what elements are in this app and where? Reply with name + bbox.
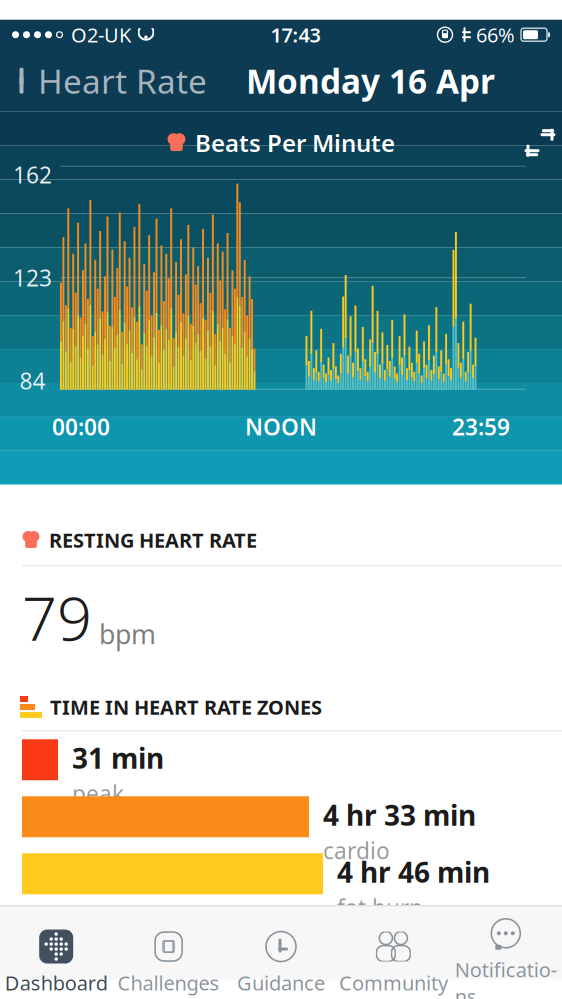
staticText: Heart Rate [38,59,207,103]
staticText: Guidance [237,970,325,996]
staticText: NOON [245,412,317,442]
staticText: Beats Per Minute [195,127,395,159]
staticText: Dashboard [5,970,108,996]
staticText: TIME IN HEART RATE ZONES [50,694,322,720]
staticText: O2-UK [71,21,131,48]
button[interactable]: Notifications [450,913,562,999]
staticText: peak [72,778,124,809]
staticText: 123 [13,263,52,293]
staticText: bpm [99,616,156,652]
staticText: Monday 16 Apr [246,59,495,103]
staticText: Challenges [118,970,220,996]
button[interactable]: Expand chart [518,121,562,165]
staticText: 162 [13,160,52,190]
button[interactable]: Challenges [112,927,225,998]
staticText: 23:59 [452,412,510,442]
staticText: 79 [22,576,92,658]
button[interactable]: Dashboard [0,927,112,998]
staticText: 66% [476,21,515,48]
staticText: 84 [19,366,45,396]
staticText: 17:43 [270,21,320,48]
button[interactable]: Community [337,927,450,998]
staticText: cardio [323,835,390,866]
staticText: 4 hr 46 min [337,853,490,890]
button[interactable]: Guidance [225,927,337,998]
staticText: fat burn [337,892,423,923]
staticText: 4 hr 33 min [323,796,476,833]
button[interactable]: Heart Rate [0,51,207,111]
staticText: 00:00 [52,412,110,442]
staticText: Community [339,970,448,996]
staticText: RESTING HEART RATE [49,527,257,553]
staticText: Notifications [455,956,557,999]
staticText: 31 min [72,739,164,776]
